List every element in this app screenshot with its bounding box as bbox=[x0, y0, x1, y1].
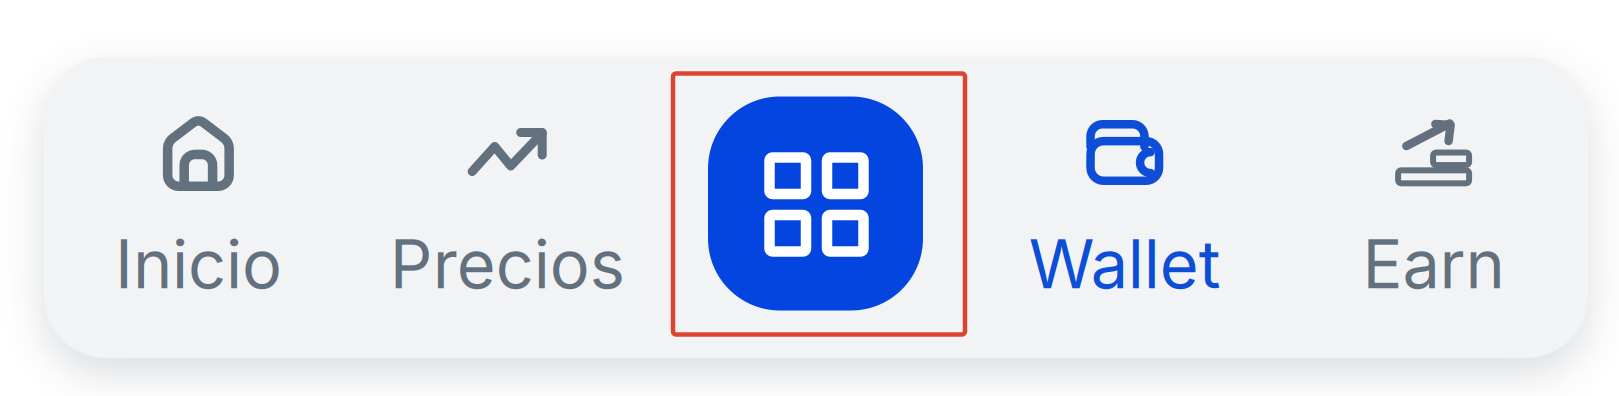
button[interactable]: Wallet bbox=[970, 57, 1279, 358]
staticText: Precios bbox=[390, 224, 625, 304]
button[interactable]: Earn bbox=[1279, 57, 1588, 358]
staticText: Wallet bbox=[1029, 224, 1221, 304]
button[interactable]: Precios bbox=[353, 57, 662, 358]
staticText: Earn bbox=[1363, 224, 1505, 304]
staticText: Inicio bbox=[115, 224, 282, 304]
button[interactable]: Inicio bbox=[44, 57, 353, 358]
button[interactable]: Apps bbox=[673, 73, 965, 334]
